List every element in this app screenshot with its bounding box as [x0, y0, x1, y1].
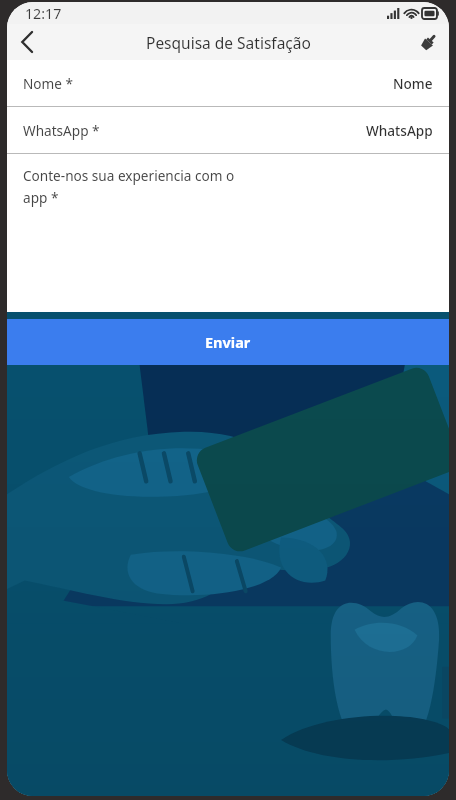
- staticText: WhatsApp *: [23, 121, 100, 140]
- staticText: Nome *: [23, 74, 73, 93]
- staticText: Conte-nos sua experiencia com o: [23, 166, 235, 185]
- staticText: Nome: [393, 74, 433, 93]
- staticText: Enviar: [205, 332, 251, 352]
- button[interactable]: Back: [7, 24, 47, 60]
- button[interactable]: Enviar: [7, 319, 449, 365]
- staticText: WhatsApp: [366, 121, 433, 140]
- staticText: app *: [23, 188, 59, 207]
- staticText: 12:17: [25, 4, 62, 23]
- staticText: Pesquisa de Satisfação: [146, 32, 311, 53]
- button[interactable]: Nome *: [7, 60, 449, 106]
- button[interactable]: Theme: [407, 24, 449, 60]
- button[interactable]: WhatsApp *: [7, 107, 449, 153]
- button[interactable]: Conte-nos sua experiencia com o: [7, 154, 449, 312]
